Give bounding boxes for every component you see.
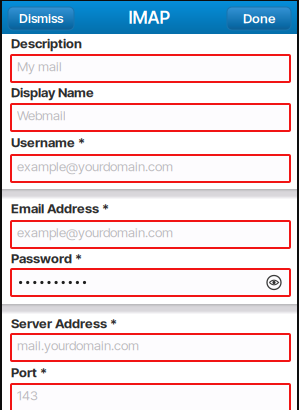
staticText: IMAP (128, 7, 170, 28)
staticText: mail.yourdomain.com (17, 337, 139, 353)
button[interactable]: Dismiss (8, 7, 74, 30)
staticText: Done (243, 10, 275, 26)
staticText: Port * (11, 364, 47, 380)
staticText: Server Address * (11, 315, 117, 331)
button[interactable]: Done (227, 7, 291, 30)
staticText: example@yourdomain.com (17, 158, 173, 174)
button[interactable]: Show password (264, 269, 284, 296)
staticText: Display Name (11, 84, 94, 100)
staticText: example@yourdomain.com (17, 224, 173, 240)
staticText: Email Address * (11, 200, 109, 216)
staticText: Dismiss (19, 11, 63, 26)
staticText: Description (11, 35, 82, 51)
staticText: Webmail (17, 107, 66, 123)
staticText: 143 (17, 387, 38, 403)
staticText: Password * (11, 250, 82, 266)
staticText: My mail (17, 58, 62, 74)
staticText: Username * (11, 134, 85, 150)
